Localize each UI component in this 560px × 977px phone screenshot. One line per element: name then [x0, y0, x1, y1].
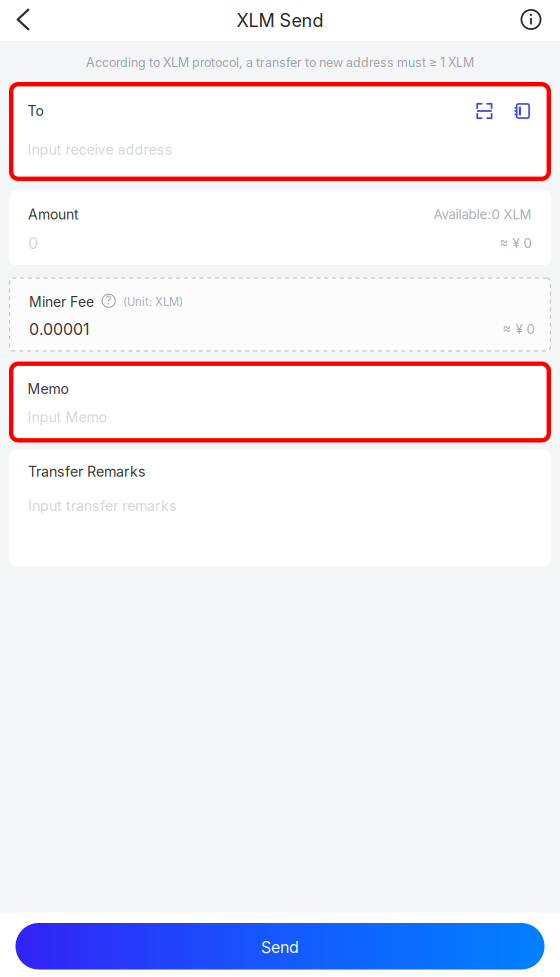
staticText: (Unit: XLM) [123, 295, 183, 309]
staticText: Input Memo [27, 408, 107, 426]
staticText: To [27, 102, 43, 119]
staticText: Send [261, 938, 299, 957]
button[interactable]: Send [15, 923, 544, 969]
staticText: According to XLM protocol, a transfer to… [86, 55, 474, 70]
button[interactable]: Back [0, 0, 45, 40]
staticText: Memo [27, 380, 68, 397]
staticText: ? [106, 293, 112, 307]
staticText: Input transfer remarks [28, 497, 177, 515]
staticText: ≈ ¥ 0 [502, 321, 534, 337]
button[interactable]: Information [508, 0, 553, 40]
staticText: Amount [28, 206, 79, 223]
staticText: ≈ ¥ 0 [499, 235, 531, 251]
staticText: 0 [28, 233, 38, 253]
staticText: Available:0 XLM [433, 206, 531, 222]
staticText: Miner Fee [29, 293, 94, 310]
button[interactable]: Scan QR code [472, 100, 496, 122]
staticText: 0.00001 [29, 319, 90, 339]
staticText: Transfer Remarks [28, 463, 146, 480]
staticText: XLM Send [236, 10, 323, 31]
staticText: Input receive address [27, 141, 172, 158]
button[interactable]: Choose from address book [511, 100, 533, 122]
